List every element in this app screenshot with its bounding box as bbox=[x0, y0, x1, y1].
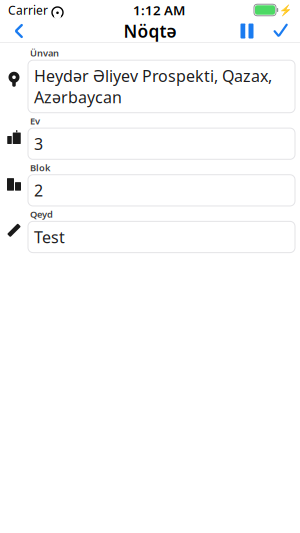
button[interactable]: Map bbox=[230, 16, 264, 46]
staticText: Heydər Əliyev Prospekti, Qazax, Azərbayc… bbox=[34, 65, 272, 108]
staticText: Qeyd bbox=[30, 208, 53, 220]
button[interactable]: Done bbox=[264, 16, 298, 46]
staticText: Carrier bbox=[8, 2, 48, 18]
staticText: Ev bbox=[30, 115, 40, 127]
staticText: ⚡ bbox=[279, 4, 292, 16]
button[interactable]: Back bbox=[2, 16, 36, 46]
staticText: 3 bbox=[34, 133, 43, 154]
staticText: 1:12 AM bbox=[133, 1, 185, 19]
staticText: Nöqtə bbox=[123, 19, 176, 42]
staticText: Ünvan bbox=[30, 47, 59, 59]
staticText: 2 bbox=[34, 180, 43, 201]
staticText: Test bbox=[34, 226, 65, 248]
staticText: Blok bbox=[30, 161, 50, 174]
